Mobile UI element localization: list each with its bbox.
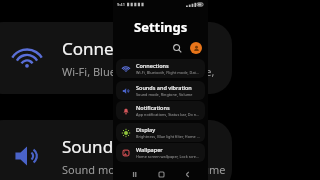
staticText: Brightness, Blue light filter, Home scre… bbox=[136, 134, 201, 139]
staticText: Connections bbox=[136, 62, 169, 69]
button[interactable]: Notifications bbox=[116, 101, 205, 120]
button[interactable]: Search bbox=[170, 41, 184, 55]
staticText: Sound mode, Ringtone, Volume bbox=[136, 92, 193, 97]
button[interactable]: Sounds a bbox=[0, 120, 232, 180]
staticText: App notifications, Status bar, Do not di… bbox=[136, 112, 201, 117]
staticText: Wallpaper bbox=[136, 146, 163, 153]
button[interactable]: Back bbox=[181, 168, 193, 180]
button[interactable]: Wallpaper bbox=[116, 143, 205, 162]
button[interactable]: Connections bbox=[116, 59, 205, 78]
staticText: Sounds a bbox=[62, 135, 136, 158]
button[interactable]: Display bbox=[116, 123, 205, 142]
staticText: Sounds and vibration bbox=[136, 84, 192, 91]
staticText: Home screen wallpaper, Lock screen wallp… bbox=[136, 154, 201, 159]
staticText: Settings bbox=[134, 18, 188, 36]
staticText: Sound mode, Ringtone, Volume bbox=[62, 162, 226, 177]
staticText: Connecti bbox=[62, 37, 133, 60]
button[interactable]: Recents bbox=[128, 168, 140, 180]
button[interactable]: Sounds and vibration bbox=[116, 81, 205, 100]
staticText: Display bbox=[136, 126, 156, 133]
staticText: Wi-Fi, Bluetooth, Flight mode, Data usag… bbox=[136, 70, 201, 75]
staticText: 9:41 bbox=[117, 2, 125, 7]
button[interactable]: Home bbox=[155, 168, 167, 180]
button[interactable]: Connecti bbox=[0, 22, 232, 94]
staticText: Wi-Fi, Bluetooth, Flight mode, Data usag… bbox=[62, 64, 232, 79]
button[interactable]: Account bbox=[190, 42, 202, 54]
staticText: Notifications bbox=[136, 104, 170, 111]
